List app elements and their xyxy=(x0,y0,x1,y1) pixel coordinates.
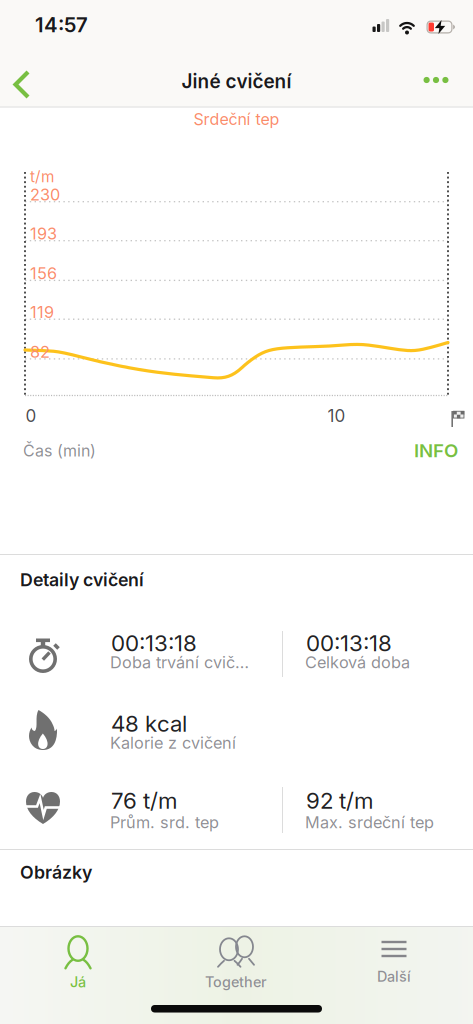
staticText: 00:13:18 xyxy=(306,629,392,657)
staticText: Čas (min) xyxy=(23,441,96,460)
staticText: Together xyxy=(205,973,267,991)
staticText: 82 xyxy=(30,342,50,362)
staticText: Prům. srd. tep xyxy=(110,812,219,832)
staticText: Doba trvání cvič… xyxy=(110,652,249,672)
staticText: Max. srdeční tep xyxy=(305,812,434,832)
staticText: 00:13:18 xyxy=(111,629,197,657)
staticText: 230 xyxy=(30,185,60,204)
button[interactable]: Další xyxy=(334,933,454,993)
staticText: Obrázky xyxy=(20,861,92,883)
staticText: 10 xyxy=(327,405,345,426)
staticText: t/m xyxy=(30,167,54,186)
staticText: Kalorie z cvičení xyxy=(110,733,236,753)
staticText: 76 t/m xyxy=(111,787,177,814)
staticText: Srdeční tep xyxy=(193,109,279,129)
staticText: 14:57 xyxy=(35,12,88,37)
staticText: Další xyxy=(377,968,411,985)
staticText: 0 xyxy=(25,405,36,426)
button[interactable]: More xyxy=(414,58,458,102)
staticText: Celková doba xyxy=(305,652,410,672)
button[interactable]: Together xyxy=(176,933,296,993)
staticText: 48 kcal xyxy=(111,710,187,737)
staticText: Já xyxy=(70,973,86,991)
button[interactable]: INFO xyxy=(388,437,458,463)
button[interactable]: Já xyxy=(18,933,138,993)
staticText: 193 xyxy=(30,224,57,243)
staticText: 119 xyxy=(30,302,54,322)
staticText: 156 xyxy=(30,263,57,283)
staticText: Detaily cvičení xyxy=(20,569,144,590)
staticText: 92 t/m xyxy=(306,787,373,814)
button[interactable]: Back xyxy=(1,63,45,107)
staticText: Jiné cvičení xyxy=(181,70,291,93)
staticText: INFO xyxy=(414,439,458,462)
